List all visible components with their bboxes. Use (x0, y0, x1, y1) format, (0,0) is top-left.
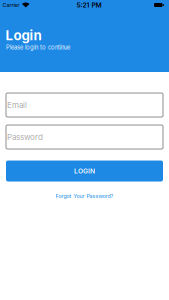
staticText: Please login to continue (6, 44, 70, 51)
button[interactable]: Password (6, 125, 163, 149)
staticText: Login (5, 27, 41, 43)
staticText: LOGIN (74, 167, 95, 175)
button[interactable]: Email (6, 93, 163, 117)
staticText: Email (7, 100, 27, 110)
button[interactable]: LOGIN (6, 160, 163, 181)
staticText: Carrier (2, 2, 19, 8)
staticText: Forgot Your Password? (55, 193, 113, 199)
staticText: 5:21 PM (76, 1, 101, 9)
staticText: Password (7, 132, 43, 142)
button[interactable]: Forgot Your Password? (55, 193, 113, 199)
